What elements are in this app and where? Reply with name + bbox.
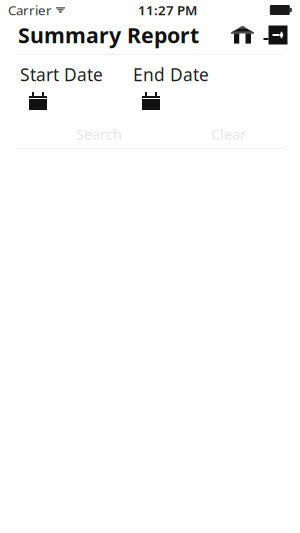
button[interactable]: Sign Out <box>261 23 290 46</box>
staticText: Carrier <box>8 1 52 19</box>
staticText: Search <box>76 124 122 144</box>
staticText: End Date <box>133 63 209 86</box>
button[interactable]: Choose start date <box>29 91 124 111</box>
button[interactable]: Home <box>228 24 257 46</box>
staticText: Start Date <box>20 63 103 86</box>
button[interactable]: Clear <box>205 120 252 148</box>
staticText: Summary Report <box>18 21 199 49</box>
staticText: Clear <box>211 124 246 144</box>
button[interactable]: Choose end date <box>142 91 237 111</box>
staticText: 11:27 PM <box>138 1 197 19</box>
button[interactable]: Search <box>70 120 128 148</box>
